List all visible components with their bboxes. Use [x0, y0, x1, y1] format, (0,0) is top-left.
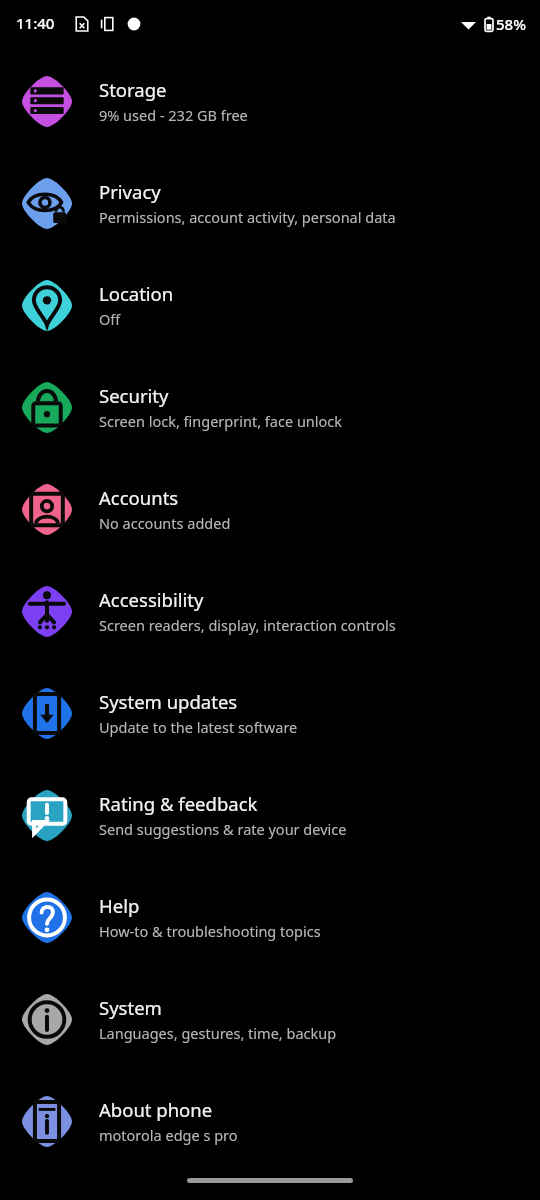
staticText: Languages, gestures, time, backup — [99, 1023, 337, 1043]
other: System — [22, 994, 72, 1045]
other: System updates — [22, 688, 72, 739]
staticText: No accounts added — [99, 513, 231, 533]
button[interactable]: Help — [0, 866, 540, 968]
staticText: About phone — [99, 1097, 213, 1122]
other: Security — [22, 382, 72, 433]
other: Help — [22, 892, 72, 943]
button[interactable]: Location — [0, 254, 540, 356]
staticText: How-to & troubleshooting topics — [99, 921, 321, 941]
staticText: Send suggestions & rate your device — [99, 819, 347, 839]
button[interactable]: System updates — [0, 662, 540, 764]
other: Accessibility — [22, 586, 72, 637]
button[interactable]: Accounts — [0, 458, 540, 560]
staticText: Permissions, account activity, personal … — [99, 207, 396, 227]
other: Rating and feedback — [22, 790, 72, 841]
staticText: Screen lock, fingerprint, face unlock — [99, 411, 343, 431]
staticText: motorola edge s pro — [99, 1125, 238, 1145]
button[interactable]: Storage — [0, 50, 540, 152]
staticText: Update to the latest software — [99, 717, 298, 737]
staticText: Accessibility — [99, 587, 204, 612]
staticText: 11:40 — [16, 13, 55, 33]
staticText: Privacy — [99, 179, 161, 204]
other: Privacy — [22, 178, 72, 229]
staticText: Location — [99, 281, 174, 306]
button[interactable]: Privacy — [0, 152, 540, 254]
button[interactable]: Security — [0, 356, 540, 458]
staticText: 9% used - 232 GB free — [99, 105, 248, 125]
other: Storage — [22, 76, 72, 127]
staticText: System — [99, 995, 162, 1020]
staticText: 58% — [496, 14, 526, 34]
staticText: Screen readers, display, interaction con… — [99, 615, 396, 635]
button[interactable]: Rating and feedback — [0, 764, 540, 866]
button[interactable]: About phone — [0, 1070, 540, 1172]
other: Accounts — [22, 484, 72, 535]
button[interactable]: Accessibility — [0, 560, 540, 662]
staticText: Accounts — [99, 485, 179, 510]
other: Location — [22, 280, 72, 331]
other: About phone — [22, 1096, 72, 1147]
staticText: Off — [99, 309, 121, 329]
staticText: System updates — [99, 689, 238, 714]
staticText: Help — [99, 893, 140, 918]
staticText: Storage — [99, 77, 167, 102]
staticText: Security — [99, 383, 169, 408]
staticText: Rating & feedback — [99, 791, 258, 816]
button[interactable]: System — [0, 968, 540, 1070]
